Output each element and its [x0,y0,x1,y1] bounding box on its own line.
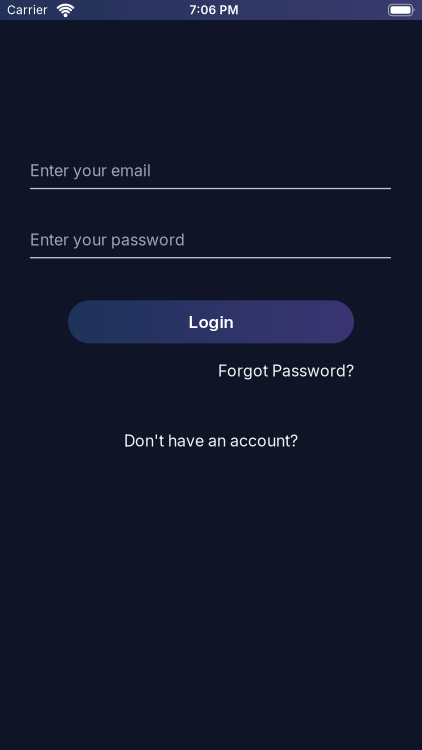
staticText: Enter your email [30,161,151,180]
staticText: Login [188,312,233,332]
staticText: Don't have an account? [124,431,298,450]
staticText: Forgot Password? [218,361,354,380]
button[interactable]: Forgot Password? [218,361,354,380]
button[interactable]: Enter your email [30,161,391,189]
button[interactable]: Login [68,300,354,343]
staticText: Carrier [7,3,48,17]
button[interactable]: Enter your password [30,230,391,258]
staticText: 7:06 PM [189,3,238,17]
staticText: Enter your password [30,230,185,249]
button[interactable]: Don't have an account? [124,431,298,450]
